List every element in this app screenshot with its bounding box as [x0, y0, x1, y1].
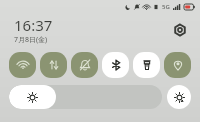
staticText: 5G	[162, 3, 170, 11]
button[interactable]: Location	[164, 52, 191, 78]
button[interactable]: Settings	[170, 20, 190, 40]
staticText: 16:37	[14, 15, 53, 35]
button[interactable]: Bluetooth	[102, 52, 129, 78]
button[interactable]: Auto brightness	[167, 85, 191, 109]
button[interactable]: Flashlight	[133, 52, 160, 78]
button[interactable]: Silent mode	[71, 52, 98, 78]
staticText: 7月8日(金)	[14, 35, 48, 45]
button[interactable]: Wi-Fi	[9, 52, 36, 78]
button[interactable]: Mobile data	[40, 52, 67, 78]
button[interactable]: 16:37	[14, 15, 53, 45]
button[interactable]: Brightness	[9, 85, 162, 109]
